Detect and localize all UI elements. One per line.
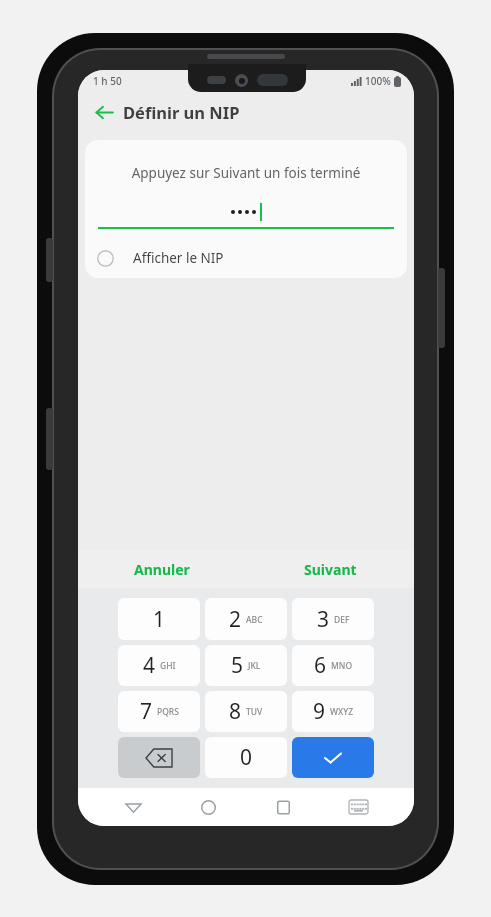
staticText: 0 xyxy=(240,743,253,772)
button[interactable]: Confirm xyxy=(292,737,374,778)
staticText: Afficher le NIP xyxy=(133,249,224,267)
button[interactable]: 9 xyxy=(292,691,374,732)
button[interactable]: Annuler xyxy=(78,550,246,588)
staticText: 2 xyxy=(229,605,242,634)
button[interactable]: Suivant xyxy=(246,550,414,588)
button[interactable]: 1 xyxy=(118,598,200,640)
button[interactable]: Recents xyxy=(246,788,321,826)
staticText: Appuyez sur Suivant un fois terminé xyxy=(85,164,407,182)
button[interactable]: 0 xyxy=(205,737,287,778)
button[interactable]: 6 xyxy=(292,645,374,686)
button[interactable]: Delete xyxy=(118,737,200,778)
staticText: 6 xyxy=(314,651,327,680)
staticText: PQRS xyxy=(157,706,179,718)
staticText: 1 h 50 xyxy=(93,74,122,88)
staticText: TUV xyxy=(246,706,263,718)
staticText: 100% xyxy=(365,74,391,88)
button[interactable]: 3 xyxy=(292,598,374,640)
button[interactable]: Afficher le NIP xyxy=(85,243,407,273)
button[interactable]: 2 xyxy=(205,598,287,640)
staticText: WXYZ xyxy=(330,706,354,718)
staticText: MNO xyxy=(331,660,353,672)
staticText: 1 xyxy=(153,605,166,634)
staticText: ABC xyxy=(246,614,263,626)
staticText: 5 xyxy=(231,651,244,680)
button[interactable]: Back xyxy=(86,94,122,130)
button[interactable]: Home xyxy=(171,788,246,826)
staticText: 8 xyxy=(229,697,242,726)
button[interactable]: 5 xyxy=(205,645,287,686)
staticText: Annuler xyxy=(134,560,190,579)
button[interactable]: 8 xyxy=(205,691,287,732)
staticText: 4 xyxy=(143,651,156,680)
staticText: JKL xyxy=(248,660,261,672)
staticText: Suivant xyxy=(304,560,357,579)
staticText: DEF xyxy=(334,614,350,626)
staticText: 7 xyxy=(140,697,153,726)
staticText: Définir un NIP xyxy=(123,101,240,123)
staticText: GHI xyxy=(160,660,176,672)
button[interactable]: 7 xyxy=(118,691,200,732)
button[interactable]: Keyboard xyxy=(321,788,396,826)
button[interactable]: 4 xyxy=(118,645,200,686)
staticText: 9 xyxy=(313,697,326,726)
staticText: 3 xyxy=(317,605,330,634)
button[interactable]: Back xyxy=(96,788,171,826)
